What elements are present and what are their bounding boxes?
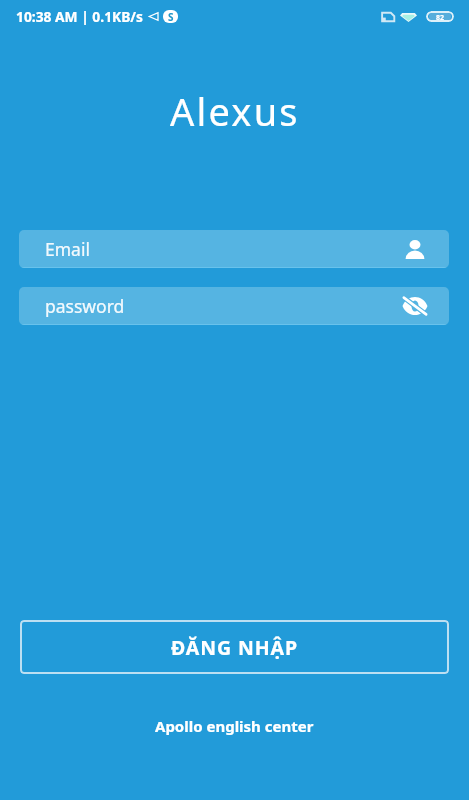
staticText: password [45, 294, 125, 318]
button[interactable]: Email [19, 230, 449, 268]
button[interactable]: Show password [400, 291, 430, 321]
staticText: Alexus [170, 85, 300, 137]
staticText: Apollo english center [155, 716, 314, 736]
staticText: S [168, 10, 174, 23]
staticText: Email [45, 237, 90, 261]
staticText: 10:38 AM | 0.1KB/s [16, 7, 144, 26]
button[interactable]: Account [400, 234, 430, 264]
button[interactable]: ĐĂNG NHẬP [20, 620, 449, 674]
button[interactable]: password [19, 287, 449, 325]
staticText: ĐĂNG NHẬP [171, 634, 298, 661]
staticText: 82 [436, 13, 445, 20]
